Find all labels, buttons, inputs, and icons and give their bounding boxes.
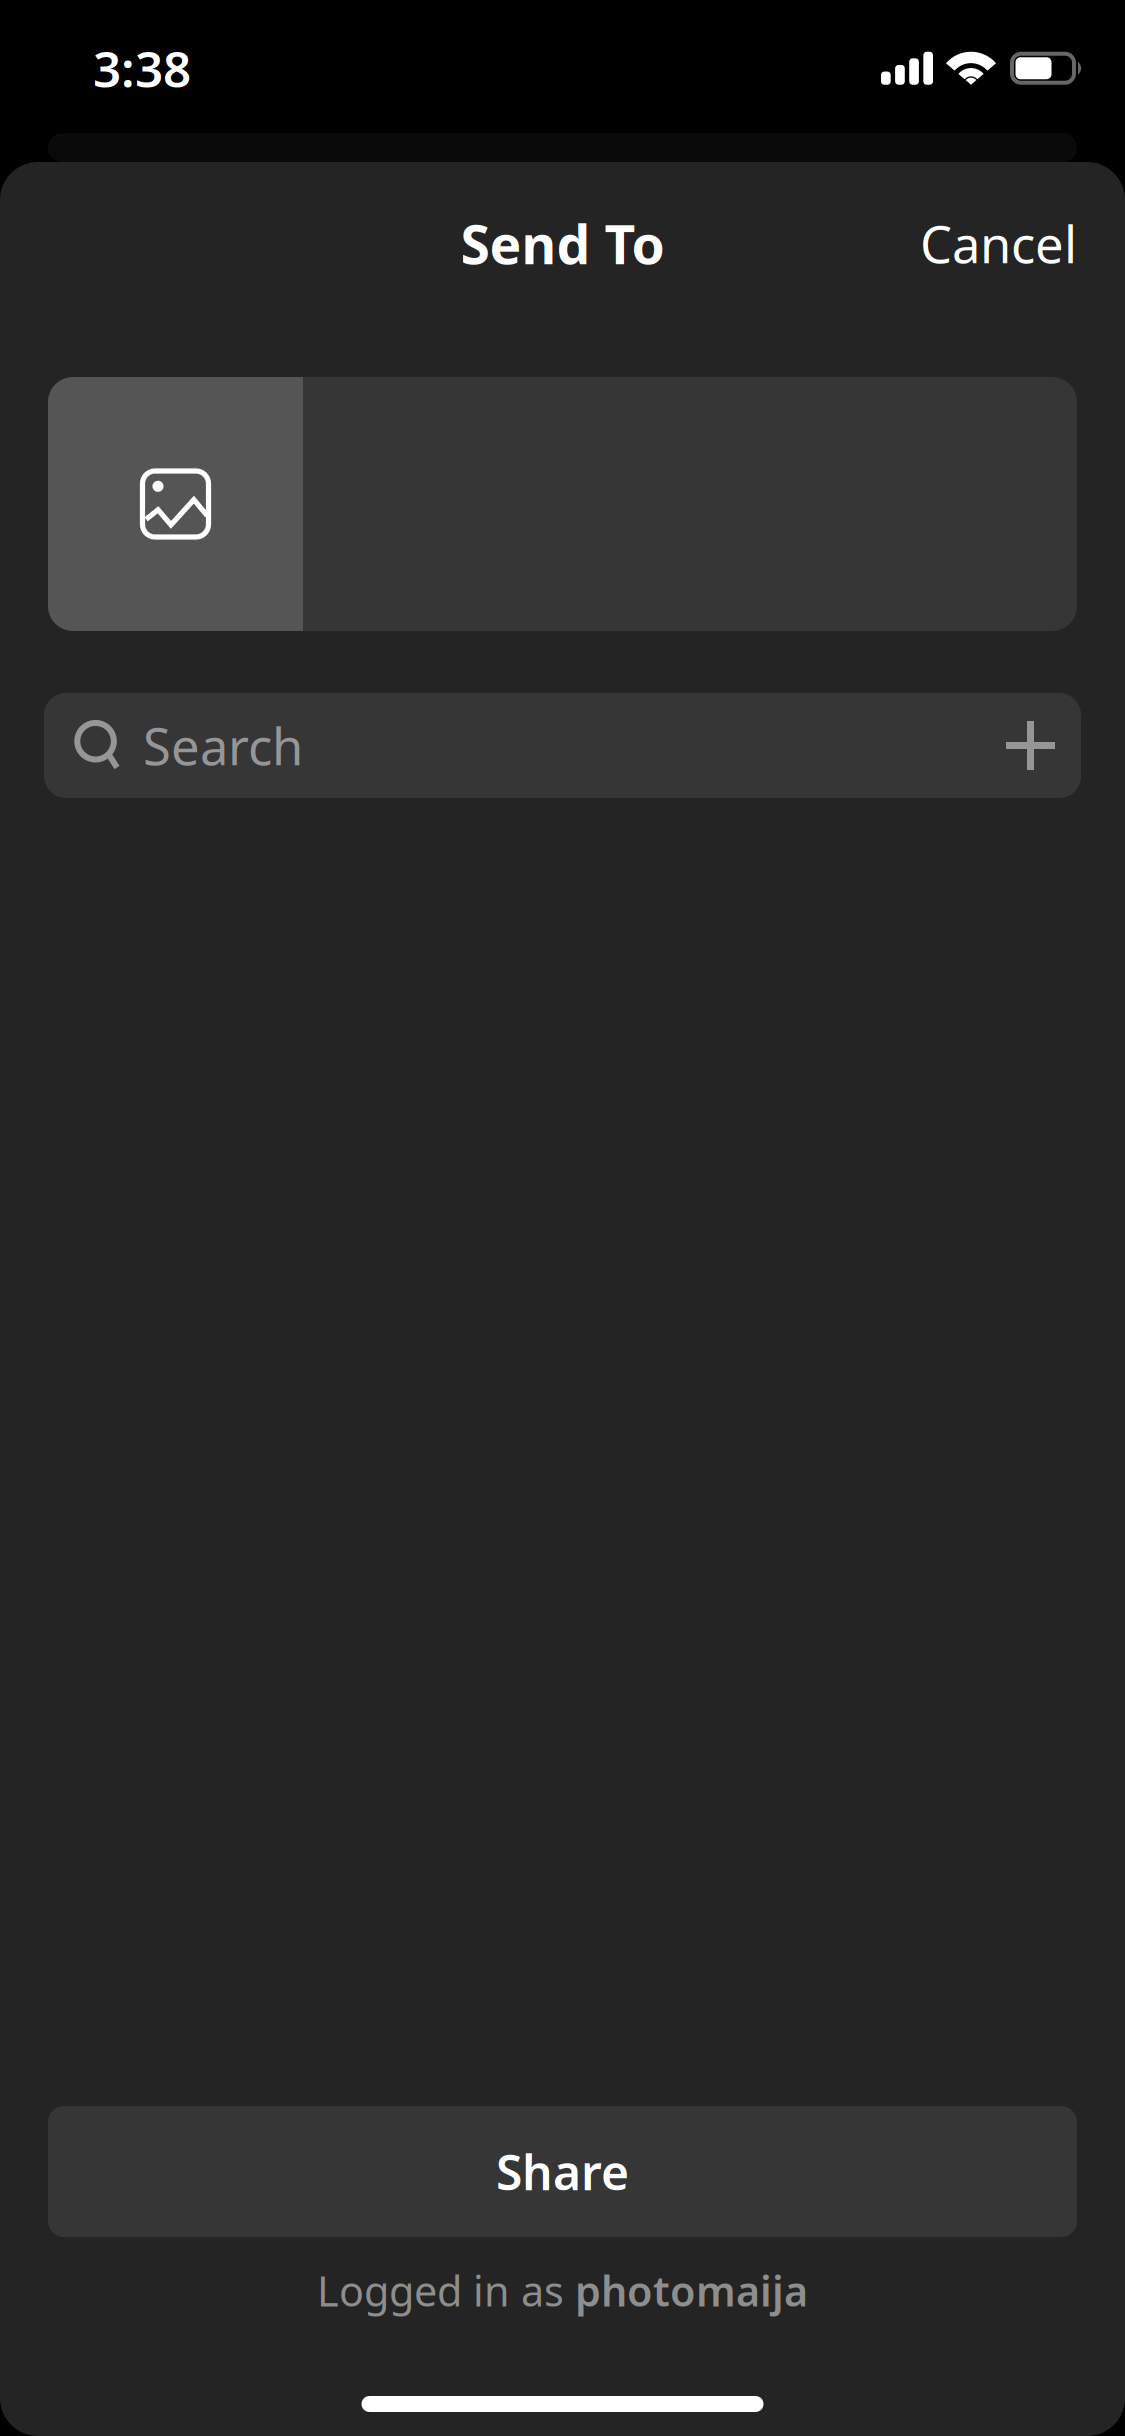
staticText: 3:38 <box>93 35 191 101</box>
staticText: Search <box>143 712 303 779</box>
staticText: Send To <box>460 208 664 279</box>
button[interactable]: Share <box>48 2106 1077 2237</box>
button[interactable]: Search <box>44 693 980 798</box>
button[interactable]: Cancel <box>904 192 1093 295</box>
button[interactable]: Add recipient <box>980 693 1081 798</box>
staticText: Share <box>496 2140 629 2203</box>
staticText: Logged in as <box>317 2263 575 2318</box>
staticText: photomaija <box>575 2263 808 2318</box>
staticText: Cancel <box>920 210 1077 277</box>
